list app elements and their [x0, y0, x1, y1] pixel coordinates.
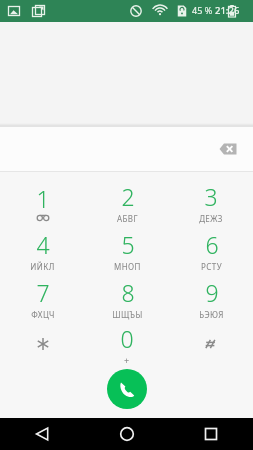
button[interactable]: 1	[0, 178, 85, 226]
staticText: 7	[36, 277, 50, 308]
button[interactable]	[169, 322, 253, 366]
button[interactable]: Back	[0, 418, 85, 450]
staticText: ФХЦЧ	[31, 309, 55, 320]
button[interactable]: 6	[169, 226, 253, 274]
button[interactable]: 9	[169, 274, 253, 322]
button[interactable]: Home	[85, 418, 169, 450]
staticText: 2	[121, 181, 135, 212]
staticText: 8	[121, 277, 135, 308]
staticText: 0	[120, 323, 134, 354]
staticText: ЬЭЮЯ	[199, 309, 224, 320]
staticText: ИЙКЛ	[30, 261, 55, 272]
staticText: 21:26	[215, 4, 240, 17]
button[interactable]: 2	[85, 178, 169, 226]
button[interactable]: 4	[0, 226, 85, 274]
staticText: 1	[36, 183, 50, 214]
button[interactable]: Call	[107, 369, 147, 409]
staticText: 9	[205, 277, 219, 308]
button[interactable]: 8	[85, 274, 169, 322]
staticText: МНОП	[114, 261, 141, 272]
button[interactable]: Recents	[169, 418, 253, 450]
button[interactable]: 7	[0, 274, 85, 322]
staticText: 6	[205, 229, 219, 260]
staticText: 45 %	[192, 4, 213, 16]
staticText: 3	[204, 181, 218, 212]
button[interactable]: 5	[85, 226, 169, 274]
staticText: 5	[121, 229, 135, 260]
button[interactable]: Backspace	[211, 132, 245, 166]
button[interactable]: 0	[85, 322, 169, 366]
staticText: +	[124, 354, 130, 366]
staticText: ДЕЖЗ	[199, 213, 223, 224]
button[interactable]	[0, 322, 85, 366]
button[interactable]: 3	[169, 178, 253, 226]
staticText: РСТУ	[201, 261, 222, 272]
staticText: АБВГ	[117, 213, 138, 224]
staticText: ШЩЪЫ	[112, 309, 143, 320]
staticText: 4	[36, 229, 50, 260]
